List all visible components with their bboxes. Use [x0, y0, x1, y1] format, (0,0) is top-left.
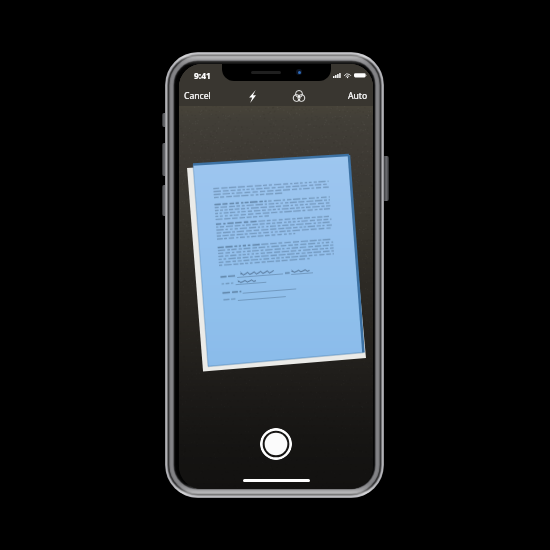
button[interactable]: Shutter [260, 428, 292, 460]
button[interactable]: Flash [244, 87, 261, 106]
button[interactable]: Cancel [179, 87, 216, 105]
button[interactable]: Auto [343, 87, 373, 105]
staticText: 9:41 [194, 70, 211, 81]
staticText: Auto [348, 90, 368, 102]
button[interactable]: Color filters [289, 87, 309, 105]
staticText: Cancel [184, 90, 211, 102]
